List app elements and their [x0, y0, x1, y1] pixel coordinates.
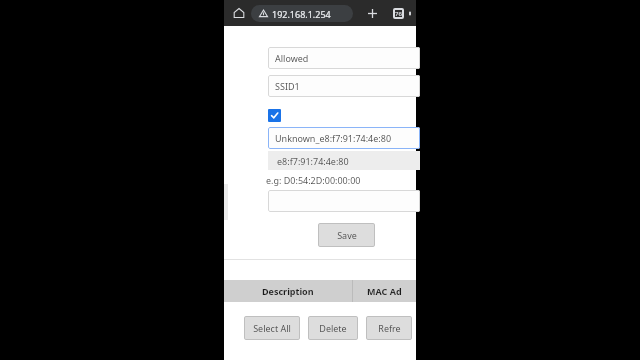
- button[interactable]: Home: [230, 4, 248, 22]
- staticText: MAC Ad: [367, 285, 402, 297]
- button[interactable]: Unknown_e8:f7:91:74:4e:80: [268, 127, 420, 149]
- button[interactable]: Refre: [366, 316, 412, 340]
- staticText: Save: [337, 229, 357, 241]
- staticText: e8:f7:91:74:4e:80: [277, 155, 349, 167]
- staticText: Select All: [253, 322, 291, 334]
- staticText: Unknown_e8:f7:91:74:4e:80: [275, 132, 392, 144]
- button[interactable]: Delete: [308, 316, 358, 340]
- button[interactable]: [268, 190, 420, 212]
- staticText: SSID1: [275, 80, 300, 92]
- button[interactable]: 192.168.1.254: [251, 5, 353, 22]
- staticText: Description: [262, 285, 314, 297]
- button[interactable]: e8:f7:91:74:4e:80: [268, 151, 420, 170]
- staticText: Allowed: [275, 52, 309, 64]
- staticText: e.g: D0:54:2D:00:00:00: [266, 174, 361, 186]
- button[interactable]: Tabs: [389, 4, 407, 22]
- button[interactable]: SSID1: [268, 75, 420, 97]
- button[interactable]: New tab: [363, 4, 381, 22]
- staticText: Delete: [319, 322, 347, 334]
- staticText: 76: [395, 10, 402, 18]
- button[interactable]: Enabled checkbox: [268, 109, 281, 122]
- staticText: Refre: [378, 322, 401, 334]
- button[interactable]: Save: [318, 223, 375, 247]
- staticText: 192.168.1.254: [272, 8, 331, 20]
- button[interactable]: Allowed: [268, 47, 420, 69]
- button[interactable]: Select All: [244, 316, 300, 340]
